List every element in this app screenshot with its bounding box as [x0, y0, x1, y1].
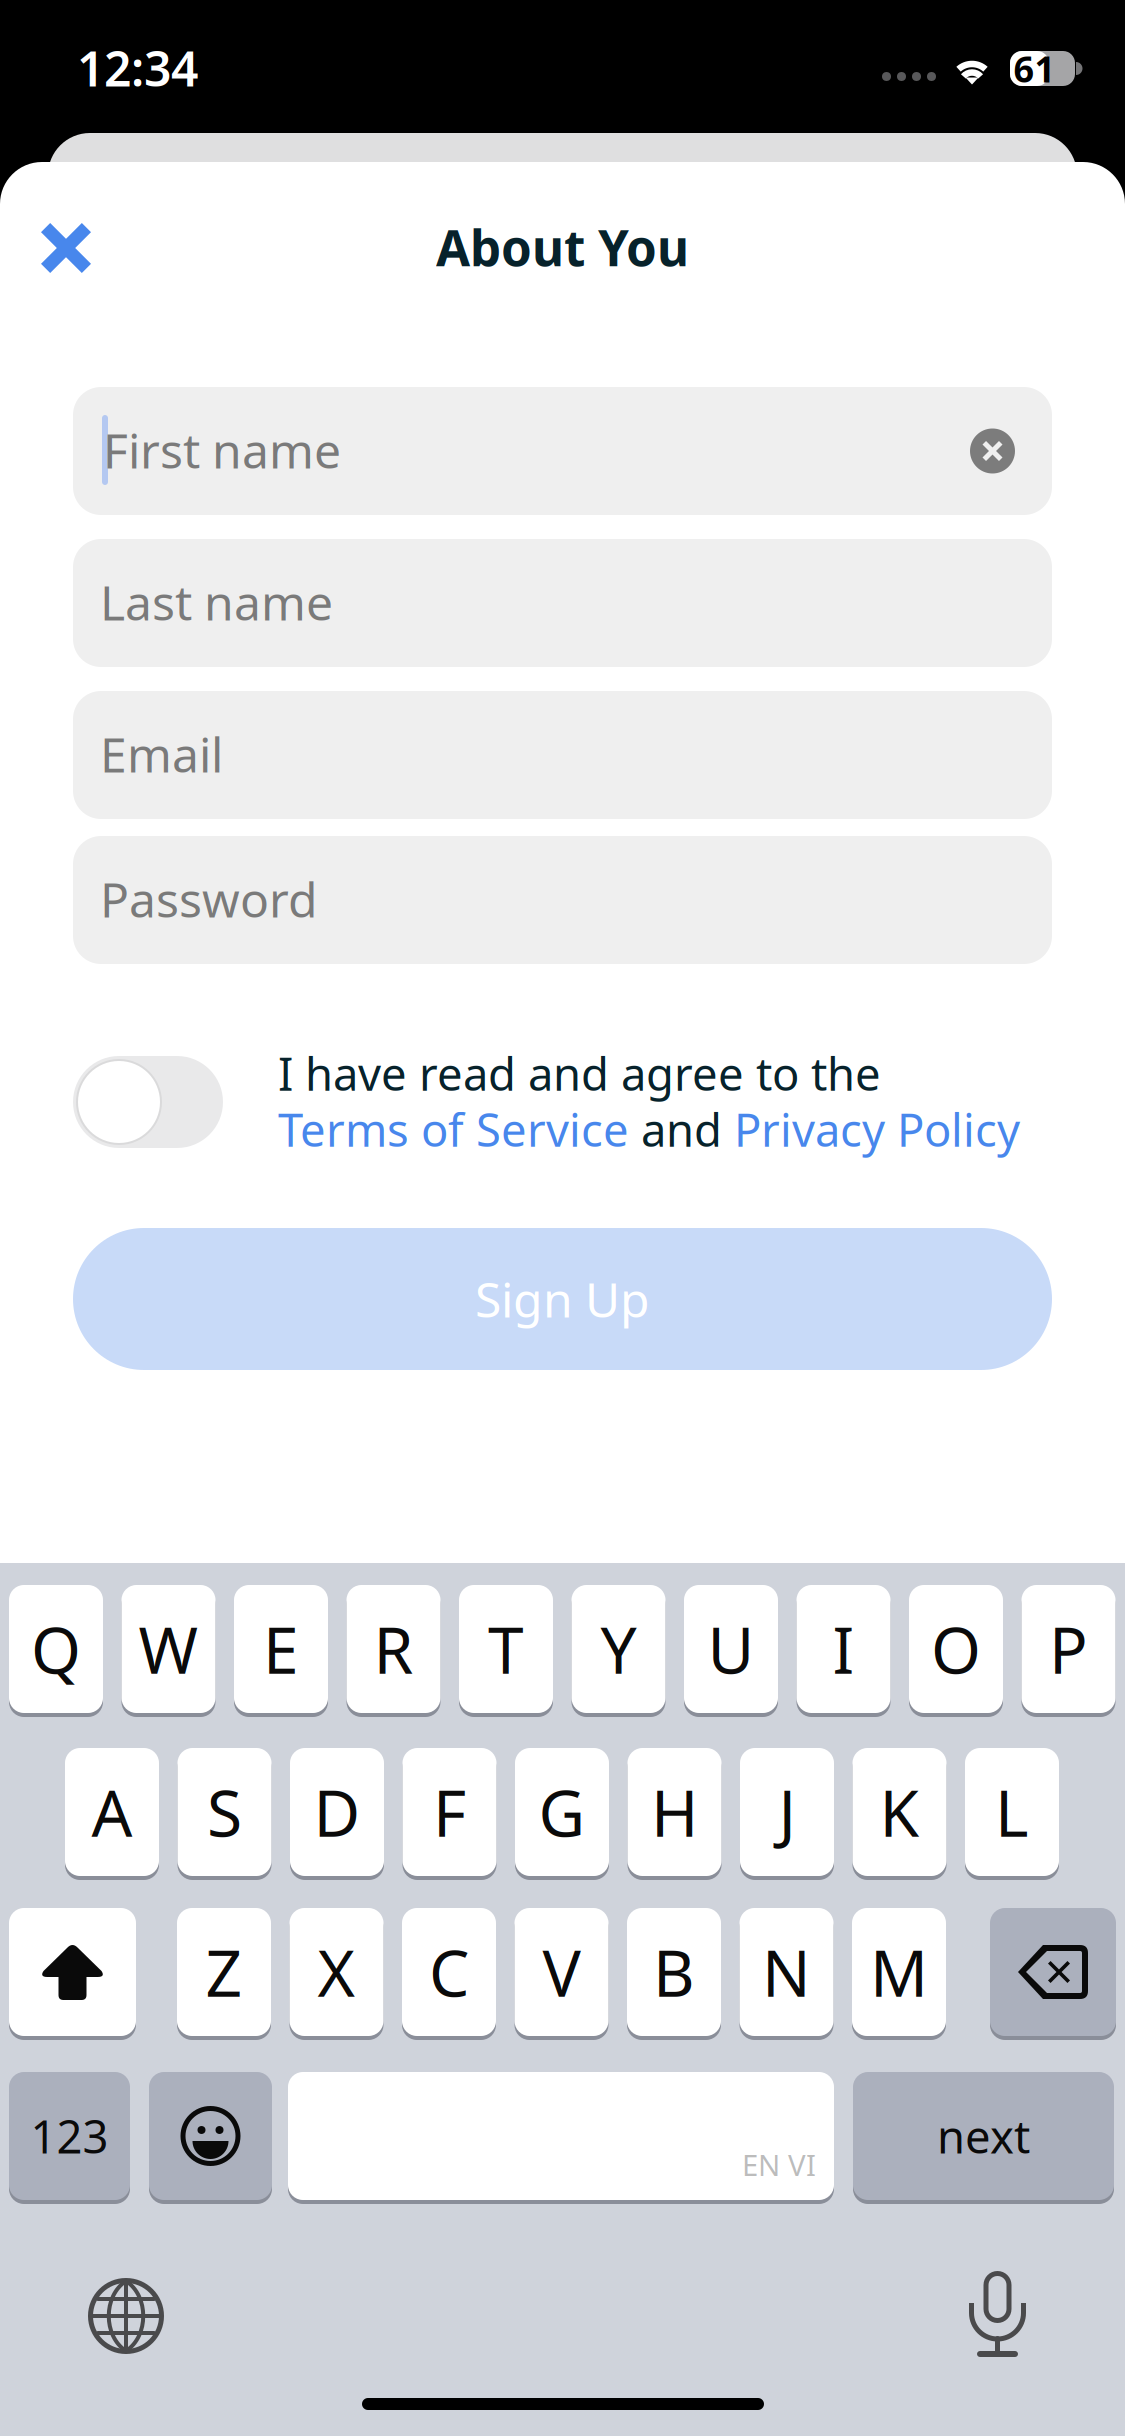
button[interactable]: Last name — [73, 539, 1052, 667]
button[interactable]: Password — [73, 836, 1052, 964]
staticText: P — [1049, 1606, 1088, 1691]
button[interactable]: Emoji — [149, 2070, 272, 2202]
button[interactable]: C — [402, 1906, 496, 2038]
staticText: J — [778, 1769, 795, 1854]
button[interactable]: G — [515, 1746, 609, 1878]
button[interactable]: M — [852, 1906, 946, 2038]
staticText: M — [870, 1929, 928, 2014]
button[interactable]: First name — [73, 387, 1052, 515]
staticText: N — [762, 1929, 811, 2014]
staticText: G — [538, 1769, 585, 1854]
staticText: B — [653, 1929, 695, 2014]
button[interactable]: R — [346, 1583, 440, 1715]
staticText: I — [832, 1606, 854, 1691]
staticText: 12:34 — [77, 36, 198, 100]
button[interactable]: Dictation — [969, 2270, 1026, 2360]
staticText: First name — [103, 418, 341, 482]
button[interactable]: X — [289, 1906, 383, 2038]
button[interactable]: Switch keyboard — [88, 2278, 164, 2354]
staticText: Privacy Policy — [734, 1099, 1020, 1159]
button[interactable]: next — [853, 2070, 1114, 2202]
staticText: T — [488, 1606, 524, 1691]
button[interactable]: Close — [16, 198, 116, 298]
button[interactable]: H — [627, 1746, 721, 1878]
button[interactable]: I — [796, 1583, 890, 1715]
button[interactable]: F — [402, 1746, 496, 1878]
button[interactable]: B — [627, 1906, 721, 2038]
staticText: D — [313, 1769, 360, 1854]
button[interactable]: K — [852, 1746, 946, 1878]
staticText: U — [707, 1606, 754, 1691]
staticText: Terms of Service — [278, 1099, 629, 1159]
button[interactable]: O — [909, 1583, 1003, 1715]
staticText: Y — [600, 1606, 636, 1691]
staticText: V — [542, 1929, 580, 2014]
button[interactable]: S — [177, 1746, 271, 1878]
staticText: Z — [205, 1929, 242, 2014]
button[interactable]: Sign Up — [73, 1228, 1052, 1370]
staticText: next — [937, 2106, 1030, 2166]
staticText: I have read and agree to the — [278, 1043, 881, 1103]
staticText: S — [207, 1769, 242, 1854]
button[interactable]: U — [684, 1583, 778, 1715]
staticText: L — [995, 1769, 1029, 1854]
staticText: EN VI — [742, 2145, 816, 2184]
staticText: K — [879, 1769, 919, 1854]
staticText: C — [429, 1929, 469, 2014]
button[interactable]: N — [739, 1906, 833, 2038]
button[interactable]: T — [459, 1583, 553, 1715]
button[interactable]: Privacy Policy — [734, 1099, 1020, 1159]
button[interactable]: W — [121, 1583, 215, 1715]
staticText: W — [138, 1606, 198, 1691]
button[interactable]: Shift — [9, 1906, 136, 2038]
button[interactable]: V — [514, 1906, 608, 2038]
button[interactable]: J — [740, 1746, 834, 1878]
staticText: Email — [100, 722, 223, 786]
button[interactable]: D — [290, 1746, 384, 1878]
staticText: F — [433, 1769, 466, 1854]
staticText: Last name — [100, 570, 333, 634]
button[interactable]: Terms of Service — [278, 1099, 629, 1159]
staticText: H — [651, 1769, 698, 1854]
button[interactable]: P — [1021, 1583, 1115, 1715]
staticText: 123 — [30, 2106, 108, 2166]
button[interactable]: I have read and agree to the Terms of Se… — [73, 1056, 223, 1148]
staticText: About You — [436, 214, 689, 280]
staticText: E — [263, 1606, 299, 1691]
button[interactable]: E — [234, 1583, 328, 1715]
button[interactable]: Q — [9, 1583, 103, 1715]
button[interactable]: A — [65, 1746, 159, 1878]
staticText: 61 — [1013, 45, 1055, 92]
button[interactable]: 123 — [9, 2070, 130, 2202]
staticText: Password — [100, 867, 318, 931]
button[interactable]: Space — [288, 2070, 834, 2202]
button[interactable]: Email — [73, 691, 1052, 819]
staticText: A — [91, 1769, 132, 1854]
staticText: X — [317, 1929, 355, 2014]
button[interactable]: Delete — [990, 1906, 1116, 2038]
staticText: and — [629, 1099, 734, 1159]
button[interactable]: L — [965, 1746, 1059, 1878]
staticText: O — [931, 1606, 981, 1691]
button[interactable]: Z — [177, 1906, 271, 2038]
staticText: Q — [31, 1606, 81, 1691]
staticText: R — [373, 1606, 413, 1691]
staticText: Sign Up — [475, 1267, 650, 1331]
button[interactable]: Y — [571, 1583, 665, 1715]
